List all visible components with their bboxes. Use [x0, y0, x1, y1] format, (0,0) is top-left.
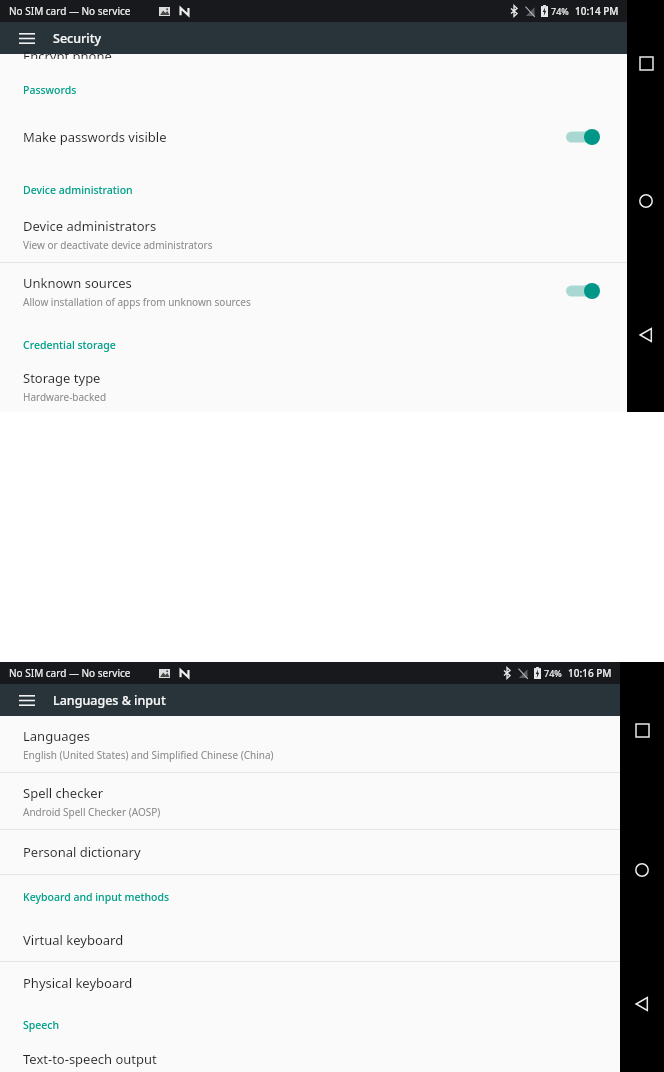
button[interactable]: Home [627, 855, 657, 885]
button[interactable]: Virtual keyboard [0, 919, 620, 961]
button[interactable]: Device administrators [0, 206, 627, 262]
staticText: 74% [551, 5, 569, 17]
button[interactable]: Encrypt phone [0, 54, 627, 66]
staticText: Unknown sources [23, 274, 132, 292]
staticText: Virtual keyboard [23, 931, 124, 949]
staticText: Make passwords visible [23, 128, 167, 146]
staticText: English (United States) and Simplified C… [23, 748, 274, 762]
button[interactable]: Personal dictionary [0, 830, 620, 874]
button[interactable]: Open navigation drawer [13, 24, 41, 52]
staticText: View or deactivate device administrators [23, 238, 213, 252]
button[interactable]: Storage type [0, 361, 627, 412]
staticText: Text-to-speech output [23, 1050, 157, 1068]
button[interactable]: Back [627, 989, 657, 1019]
staticText: Device administrators [23, 217, 157, 235]
staticText: Languages [23, 727, 91, 745]
button[interactable]: Make passwords visible [0, 114, 627, 160]
staticText: 10:14 PM [575, 4, 619, 18]
staticText: Storage type [23, 369, 101, 387]
button[interactable]: Recent apps [631, 48, 661, 78]
button[interactable]: Home [631, 186, 661, 216]
staticText: Android Spell Checker (AOSP) [23, 805, 161, 819]
staticText: Personal dictionary [23, 843, 141, 861]
button[interactable]: Unknown sources [0, 263, 627, 319]
staticText: Allow installation of apps from unknown … [23, 295, 251, 309]
staticText: Spell checker [23, 784, 104, 802]
button[interactable]: Languages [0, 716, 620, 772]
staticText: Hardware-backed [23, 390, 107, 404]
staticText: Speech [23, 1018, 60, 1032]
staticText: No SIM card — No service [9, 4, 131, 18]
staticText: No SIM card — No service [9, 666, 131, 680]
staticText: Encrypt phone [23, 47, 112, 59]
staticText: Passwords [23, 83, 77, 97]
button[interactable]: Open navigation drawer [13, 686, 41, 714]
staticText: 10:16 PM [568, 666, 612, 680]
button[interactable]: Spell checker [0, 773, 620, 829]
button[interactable]: Back [631, 320, 661, 350]
button[interactable]: Text-to-speech output [0, 1046, 620, 1072]
button[interactable]: Recent apps [627, 715, 657, 745]
staticText: 74% [544, 667, 562, 679]
staticText: Device administration [23, 183, 133, 197]
staticText: Languages & input [53, 692, 166, 709]
staticText: Physical keyboard [23, 974, 133, 992]
staticText: Credential storage [23, 338, 116, 352]
staticText: Keyboard and input methods [23, 890, 170, 904]
button[interactable]: Physical keyboard [0, 962, 620, 1004]
staticText: Security [53, 30, 102, 47]
